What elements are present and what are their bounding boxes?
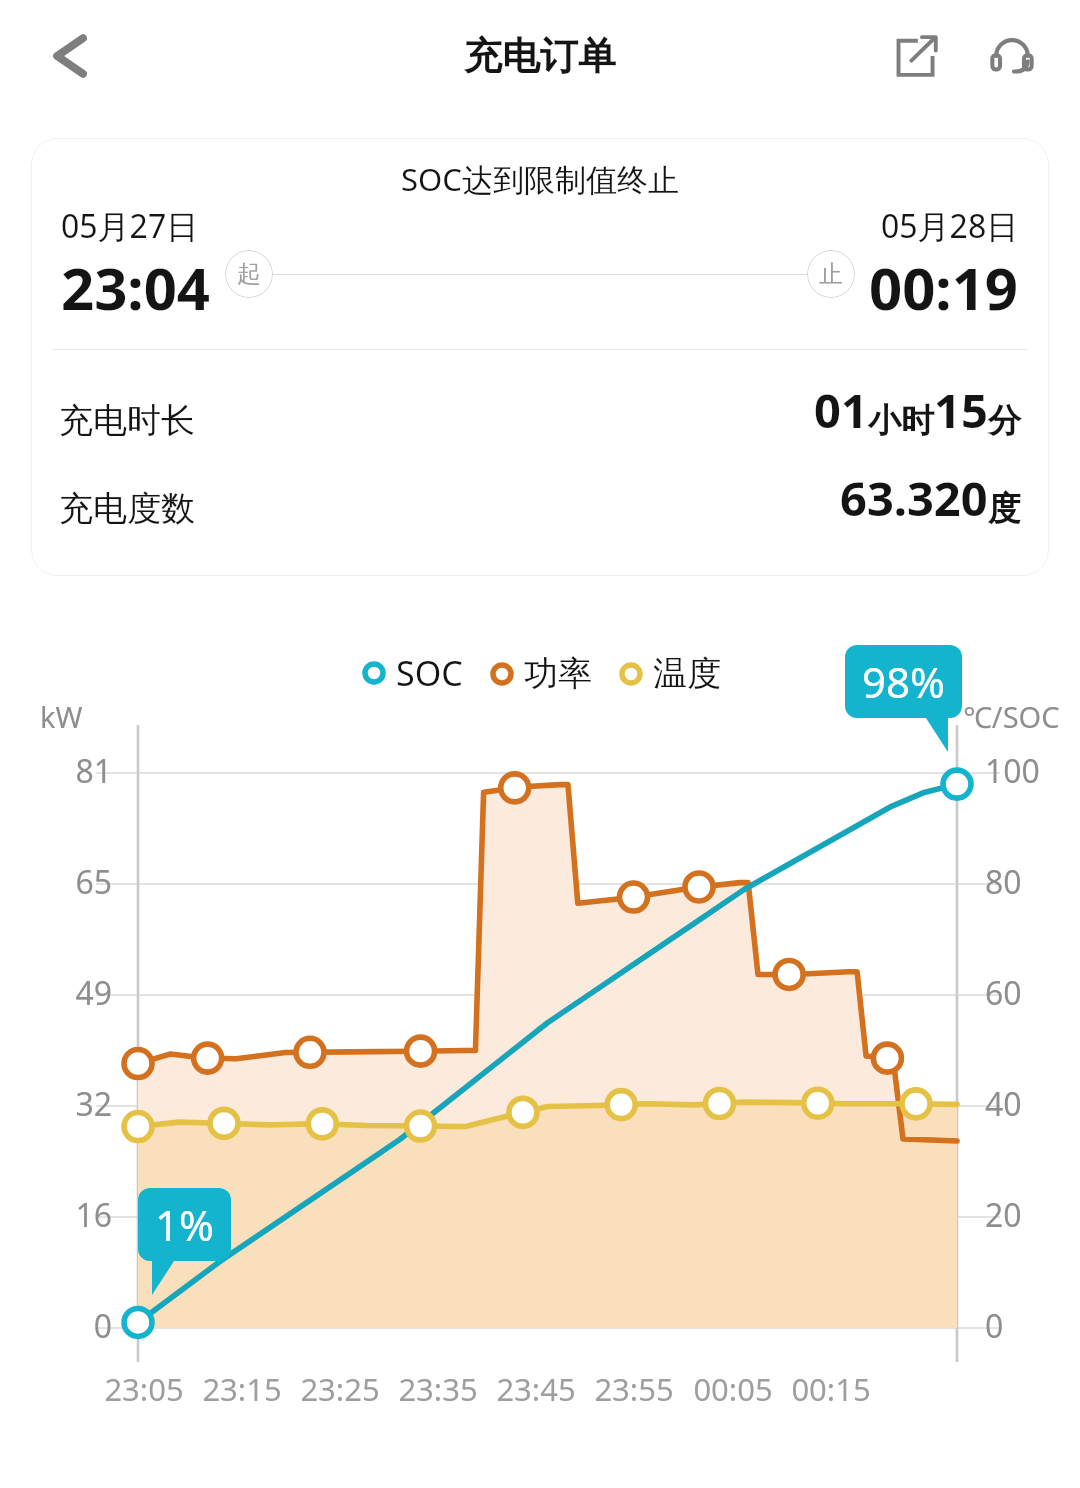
staticText: 49: [30, 971, 112, 1015]
staticText: 23:55: [564, 1368, 704, 1410]
staticText: 止: [819, 259, 843, 289]
staticText: 23:15: [172, 1368, 312, 1410]
staticText: 功率: [524, 652, 592, 695]
staticText: 00:19: [869, 248, 1019, 327]
staticText: 60: [985, 971, 1022, 1015]
staticText: 00:15: [761, 1368, 901, 1410]
staticText: 98%: [862, 653, 945, 710]
staticText: kW: [40, 697, 83, 736]
staticText: ℃/SOC: [963, 697, 1060, 736]
button[interactable]: Customer service: [978, 22, 1046, 90]
staticText: 分: [988, 400, 1021, 442]
button[interactable]: Share: [882, 22, 950, 90]
staticText: 0: [30, 1304, 112, 1348]
staticText: 小时: [868, 400, 934, 442]
staticText: SOC达到限制值终止: [31, 158, 1049, 200]
staticText: 温度: [653, 652, 721, 695]
staticText: SOC: [396, 650, 463, 696]
staticText: 05月27日: [61, 204, 199, 248]
staticText: 16: [30, 1193, 112, 1237]
staticText: 20: [985, 1193, 1022, 1237]
staticText: 01: [814, 378, 868, 442]
staticText: 05月28日: [881, 204, 1019, 248]
staticText: 40: [985, 1082, 1022, 1126]
staticText: 63.320: [840, 466, 988, 530]
staticText: 23:04: [61, 248, 211, 327]
staticText: 23:25: [270, 1368, 410, 1410]
staticText: 0: [985, 1304, 1004, 1348]
staticText: 23:05: [74, 1368, 214, 1410]
staticText: 81: [30, 749, 112, 793]
button[interactable]: SOC: [359, 650, 463, 696]
button[interactable]: SOC达到限制值终止: [31, 138, 1049, 576]
staticText: 充电订单: [464, 32, 616, 80]
staticText: 00:05: [663, 1368, 803, 1410]
staticText: 起: [237, 259, 261, 289]
button[interactable]: 温度: [616, 652, 721, 695]
button[interactable]: 功率: [487, 652, 592, 695]
button[interactable]: Back: [34, 22, 102, 90]
staticText: 15: [934, 378, 988, 442]
staticText: 100: [985, 749, 1040, 793]
staticText: 充电时长: [59, 399, 195, 442]
staticText: 32: [30, 1082, 112, 1126]
staticText: 充电度数: [59, 487, 195, 530]
staticText: 23:45: [466, 1368, 606, 1410]
staticText: 度: [988, 488, 1021, 530]
staticText: 23:35: [368, 1368, 508, 1410]
staticText: 80: [985, 860, 1022, 904]
staticText: 65: [30, 860, 112, 904]
staticText: 1%: [155, 1196, 214, 1253]
